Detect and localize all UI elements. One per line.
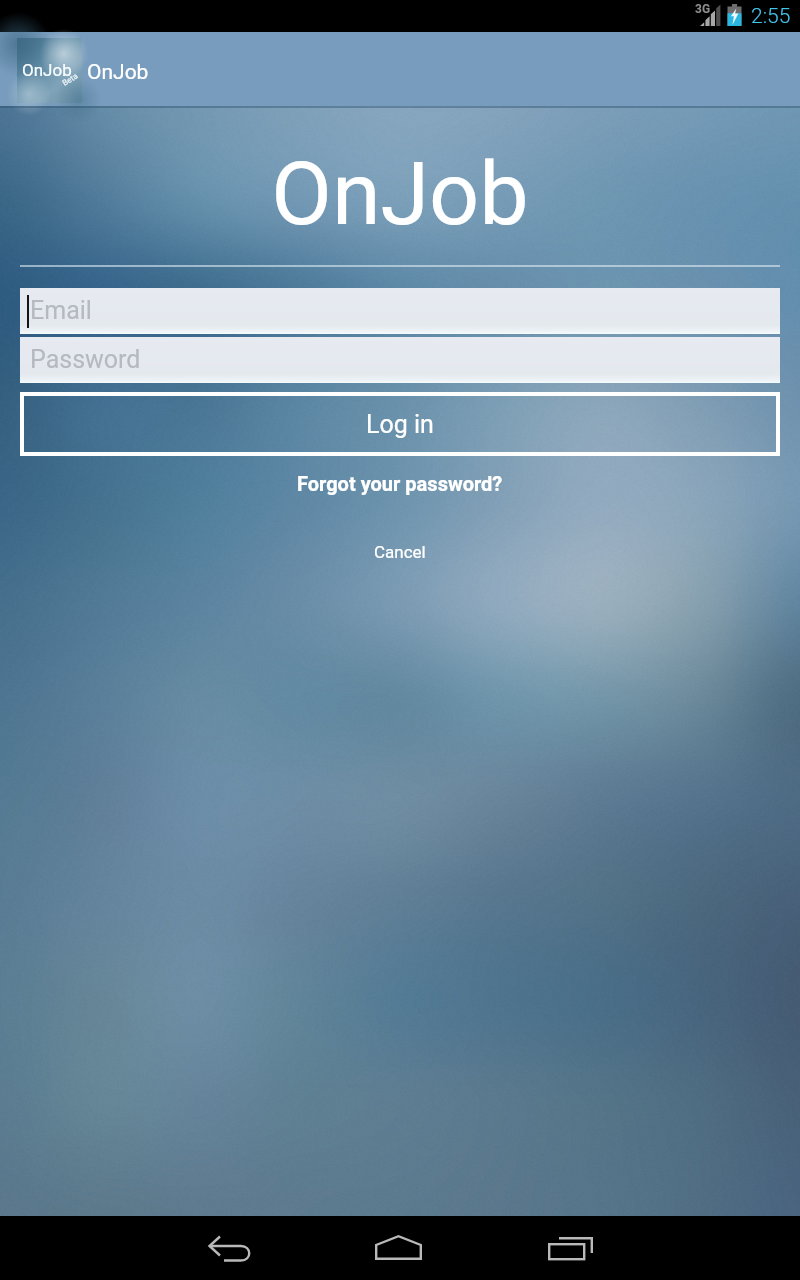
button[interactable]: Email [20,288,780,334]
staticText: Log in [366,410,434,439]
staticText: OnJob [87,60,149,85]
button[interactable]: OnJob home [17,38,82,103]
button[interactable]: Forgot your password? [287,467,513,500]
staticText: Forgot your password? [297,472,503,495]
staticText: 3G [695,2,711,16]
staticText: Beta [61,71,80,88]
button[interactable]: Password [20,337,780,383]
button[interactable]: Cancel [360,537,440,567]
staticText: OnJob [0,142,800,245]
button[interactable]: Home [356,1216,444,1280]
staticText: 2:55 [751,4,791,29]
staticText: Email [30,296,92,325]
staticText: OnJob [22,60,72,80]
staticText: Password [30,345,141,374]
button[interactable]: Recent apps [528,1216,616,1280]
button[interactable]: Back [186,1216,274,1280]
button[interactable]: Log in [20,392,780,456]
staticText: Cancel [374,542,426,562]
